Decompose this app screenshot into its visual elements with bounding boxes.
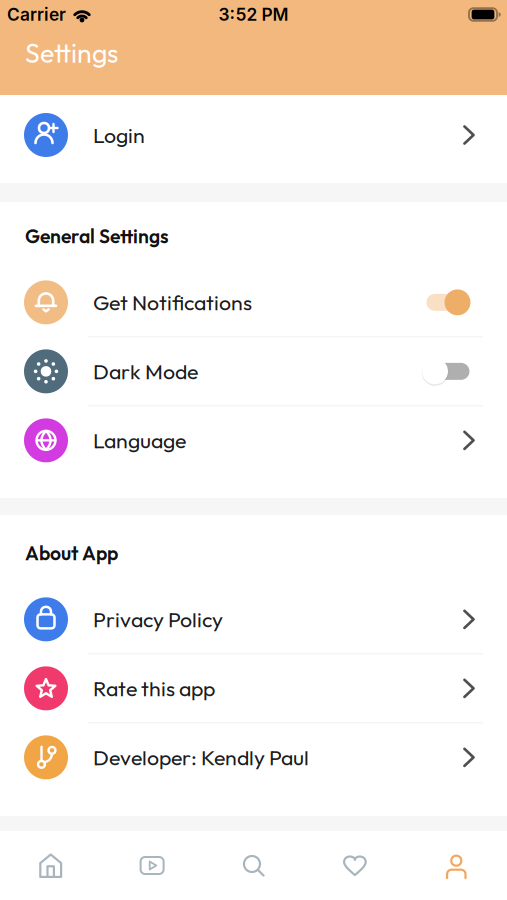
button[interactable]: Home bbox=[0, 831, 101, 900]
button[interactable]: Favorites bbox=[304, 831, 406, 900]
button[interactable]: Login bbox=[0, 101, 507, 169]
button[interactable]: Language bbox=[0, 406, 507, 474]
button[interactable]: Videos bbox=[101, 831, 203, 900]
staticText: Privacy Policy bbox=[93, 606, 223, 633]
staticText: General Settings bbox=[25, 224, 169, 248]
staticText: About App bbox=[25, 541, 118, 565]
staticText: Dark Mode bbox=[93, 358, 198, 385]
staticText: Login bbox=[93, 122, 145, 148]
staticText: Developer: Kendly Paul bbox=[93, 744, 309, 771]
staticText: Carrier bbox=[7, 4, 66, 25]
staticText: Rate this app bbox=[93, 675, 215, 702]
button[interactable]: Get Notifications bbox=[0, 268, 507, 336]
button[interactable]: Search bbox=[203, 831, 304, 900]
staticText: Settings bbox=[25, 36, 118, 70]
staticText: Language bbox=[93, 427, 186, 454]
button[interactable]: Developer: Kendly Paul bbox=[0, 723, 507, 791]
button[interactable]: Rate this app bbox=[0, 654, 507, 722]
button[interactable]: Privacy Policy bbox=[0, 585, 507, 653]
staticText: 3:52 PM bbox=[218, 4, 288, 25]
button[interactable]: Dark Mode bbox=[0, 337, 507, 405]
staticText: Get Notifications bbox=[93, 289, 252, 316]
button[interactable]: Profile bbox=[406, 831, 507, 900]
